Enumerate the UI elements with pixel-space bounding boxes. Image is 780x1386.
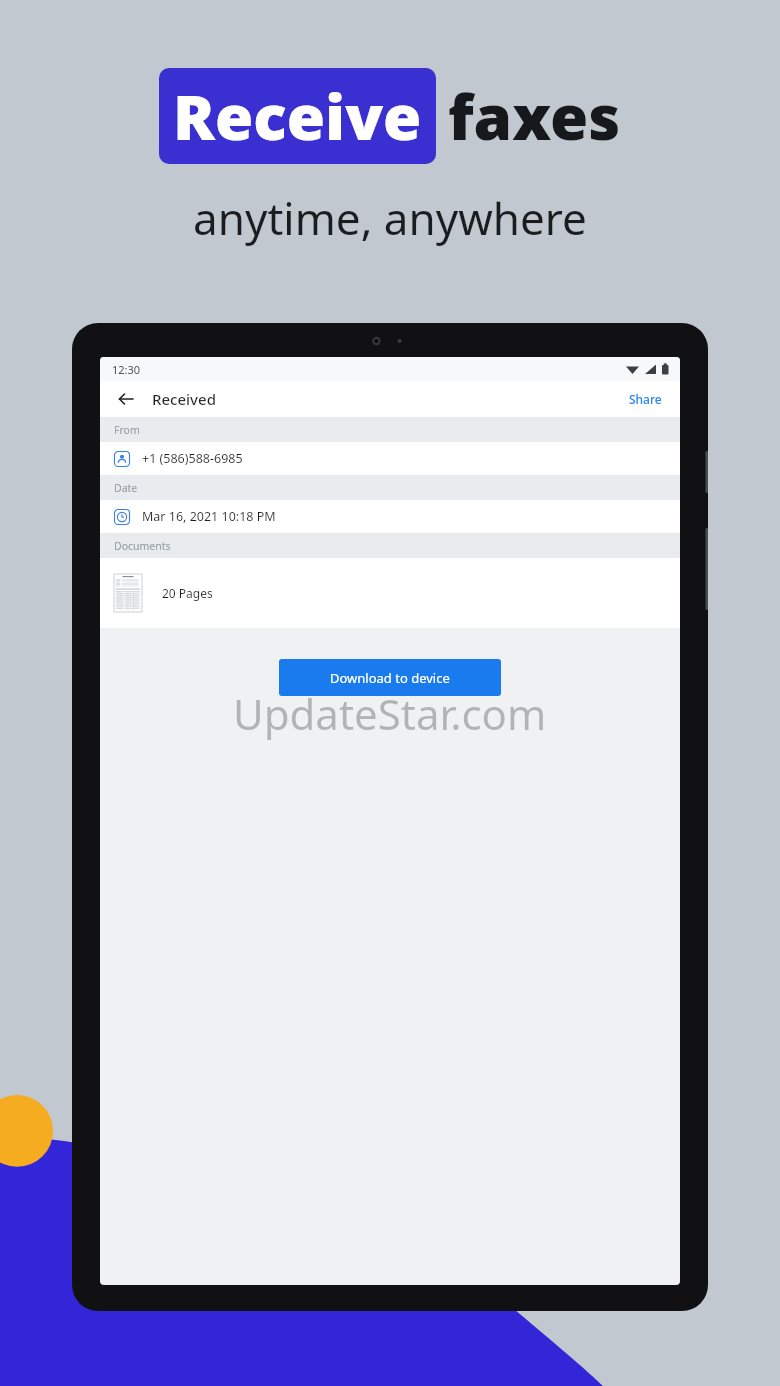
staticText: 20 Pages — [162, 585, 213, 601]
staticText: Receive — [173, 74, 422, 158]
button[interactable]: Mar 16, 2021 10:18 PM — [100, 500, 680, 533]
staticText: Mar 16, 2021 10:18 PM — [142, 508, 276, 525]
button[interactable]: +1 (586)588-6985 — [100, 442, 680, 475]
staticText: Download to device — [330, 669, 450, 687]
staticText: 12:30 — [112, 362, 141, 377]
staticText: From — [114, 423, 140, 437]
button[interactable]: Download to device — [279, 659, 501, 696]
button[interactable]: Share — [625, 387, 666, 411]
staticText: +1 (586)588-6985 — [142, 450, 243, 467]
staticText: UpdateStar.com — [233, 685, 547, 742]
staticText: Documents — [114, 539, 171, 553]
staticText: Received — [152, 389, 216, 409]
button[interactable]: 20 Pages — [100, 558, 680, 628]
staticText: anytime, anywhere — [193, 188, 587, 248]
staticText: Share — [629, 391, 662, 407]
button[interactable]: Back — [114, 387, 138, 411]
staticText: faxes — [448, 74, 621, 158]
staticText: Date — [114, 481, 138, 495]
